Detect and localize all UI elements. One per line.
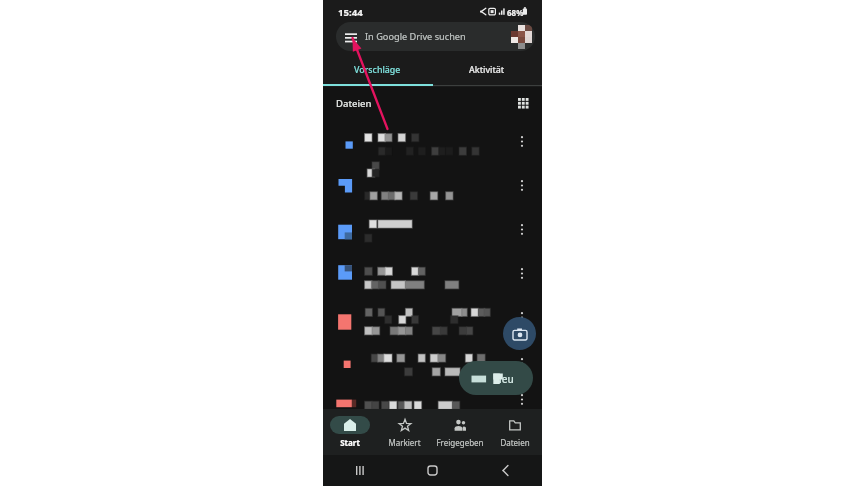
button[interactable]: Neu bbox=[459, 361, 533, 395]
staticText: Dateien bbox=[500, 437, 530, 448]
button[interactable]: More options bbox=[323, 295, 542, 340]
button[interactable]: Open navigation drawer bbox=[336, 22, 535, 51]
button[interactable]: More options bbox=[323, 119, 542, 163]
button[interactable]: Back bbox=[469, 455, 542, 486]
staticText: 68% bbox=[507, 7, 524, 18]
button[interactable]: Markiert bbox=[377, 409, 432, 455]
button[interactable]: More options bbox=[323, 207, 542, 251]
staticText: Vorschläge bbox=[354, 64, 401, 76]
staticText: In Google Drive suchen bbox=[365, 30, 466, 43]
button[interactable]: Switch to grid view bbox=[514, 94, 532, 112]
button[interactable]: Aktivität bbox=[432, 55, 542, 84]
button[interactable]: Dateien bbox=[487, 409, 542, 455]
button[interactable]: More options bbox=[513, 119, 531, 163]
staticText: Dateien bbox=[336, 97, 372, 110]
staticText: Freigegeben bbox=[436, 437, 484, 448]
other: Account bbox=[511, 25, 532, 49]
staticText: Neu bbox=[494, 372, 514, 386]
other: Open navigation drawer bbox=[345, 32, 357, 42]
button[interactable]: Home bbox=[396, 455, 469, 486]
button[interactable]: More options bbox=[513, 163, 531, 207]
button[interactable]: More options bbox=[323, 163, 542, 207]
button[interactable]: More options bbox=[513, 251, 531, 295]
button[interactable]: Scan document bbox=[503, 317, 536, 350]
button[interactable]: More options bbox=[513, 295, 531, 340]
button[interactable]: Vorschläge bbox=[323, 55, 432, 84]
button[interactable]: More options bbox=[323, 386, 542, 412]
button[interactable]: Start bbox=[323, 409, 377, 455]
button[interactable]: Recent apps bbox=[323, 455, 396, 486]
button[interactable]: Freigegeben bbox=[432, 409, 487, 455]
button[interactable]: More options bbox=[323, 340, 542, 386]
staticText: Start bbox=[340, 437, 360, 448]
button[interactable]: More options bbox=[513, 386, 531, 412]
button[interactable]: More options bbox=[323, 251, 542, 295]
staticText: 15:44 bbox=[338, 6, 363, 19]
button[interactable]: More options bbox=[513, 340, 531, 386]
staticText: Aktivität bbox=[469, 64, 505, 76]
button[interactable]: More options bbox=[513, 207, 531, 251]
staticText: Markiert bbox=[388, 437, 421, 448]
